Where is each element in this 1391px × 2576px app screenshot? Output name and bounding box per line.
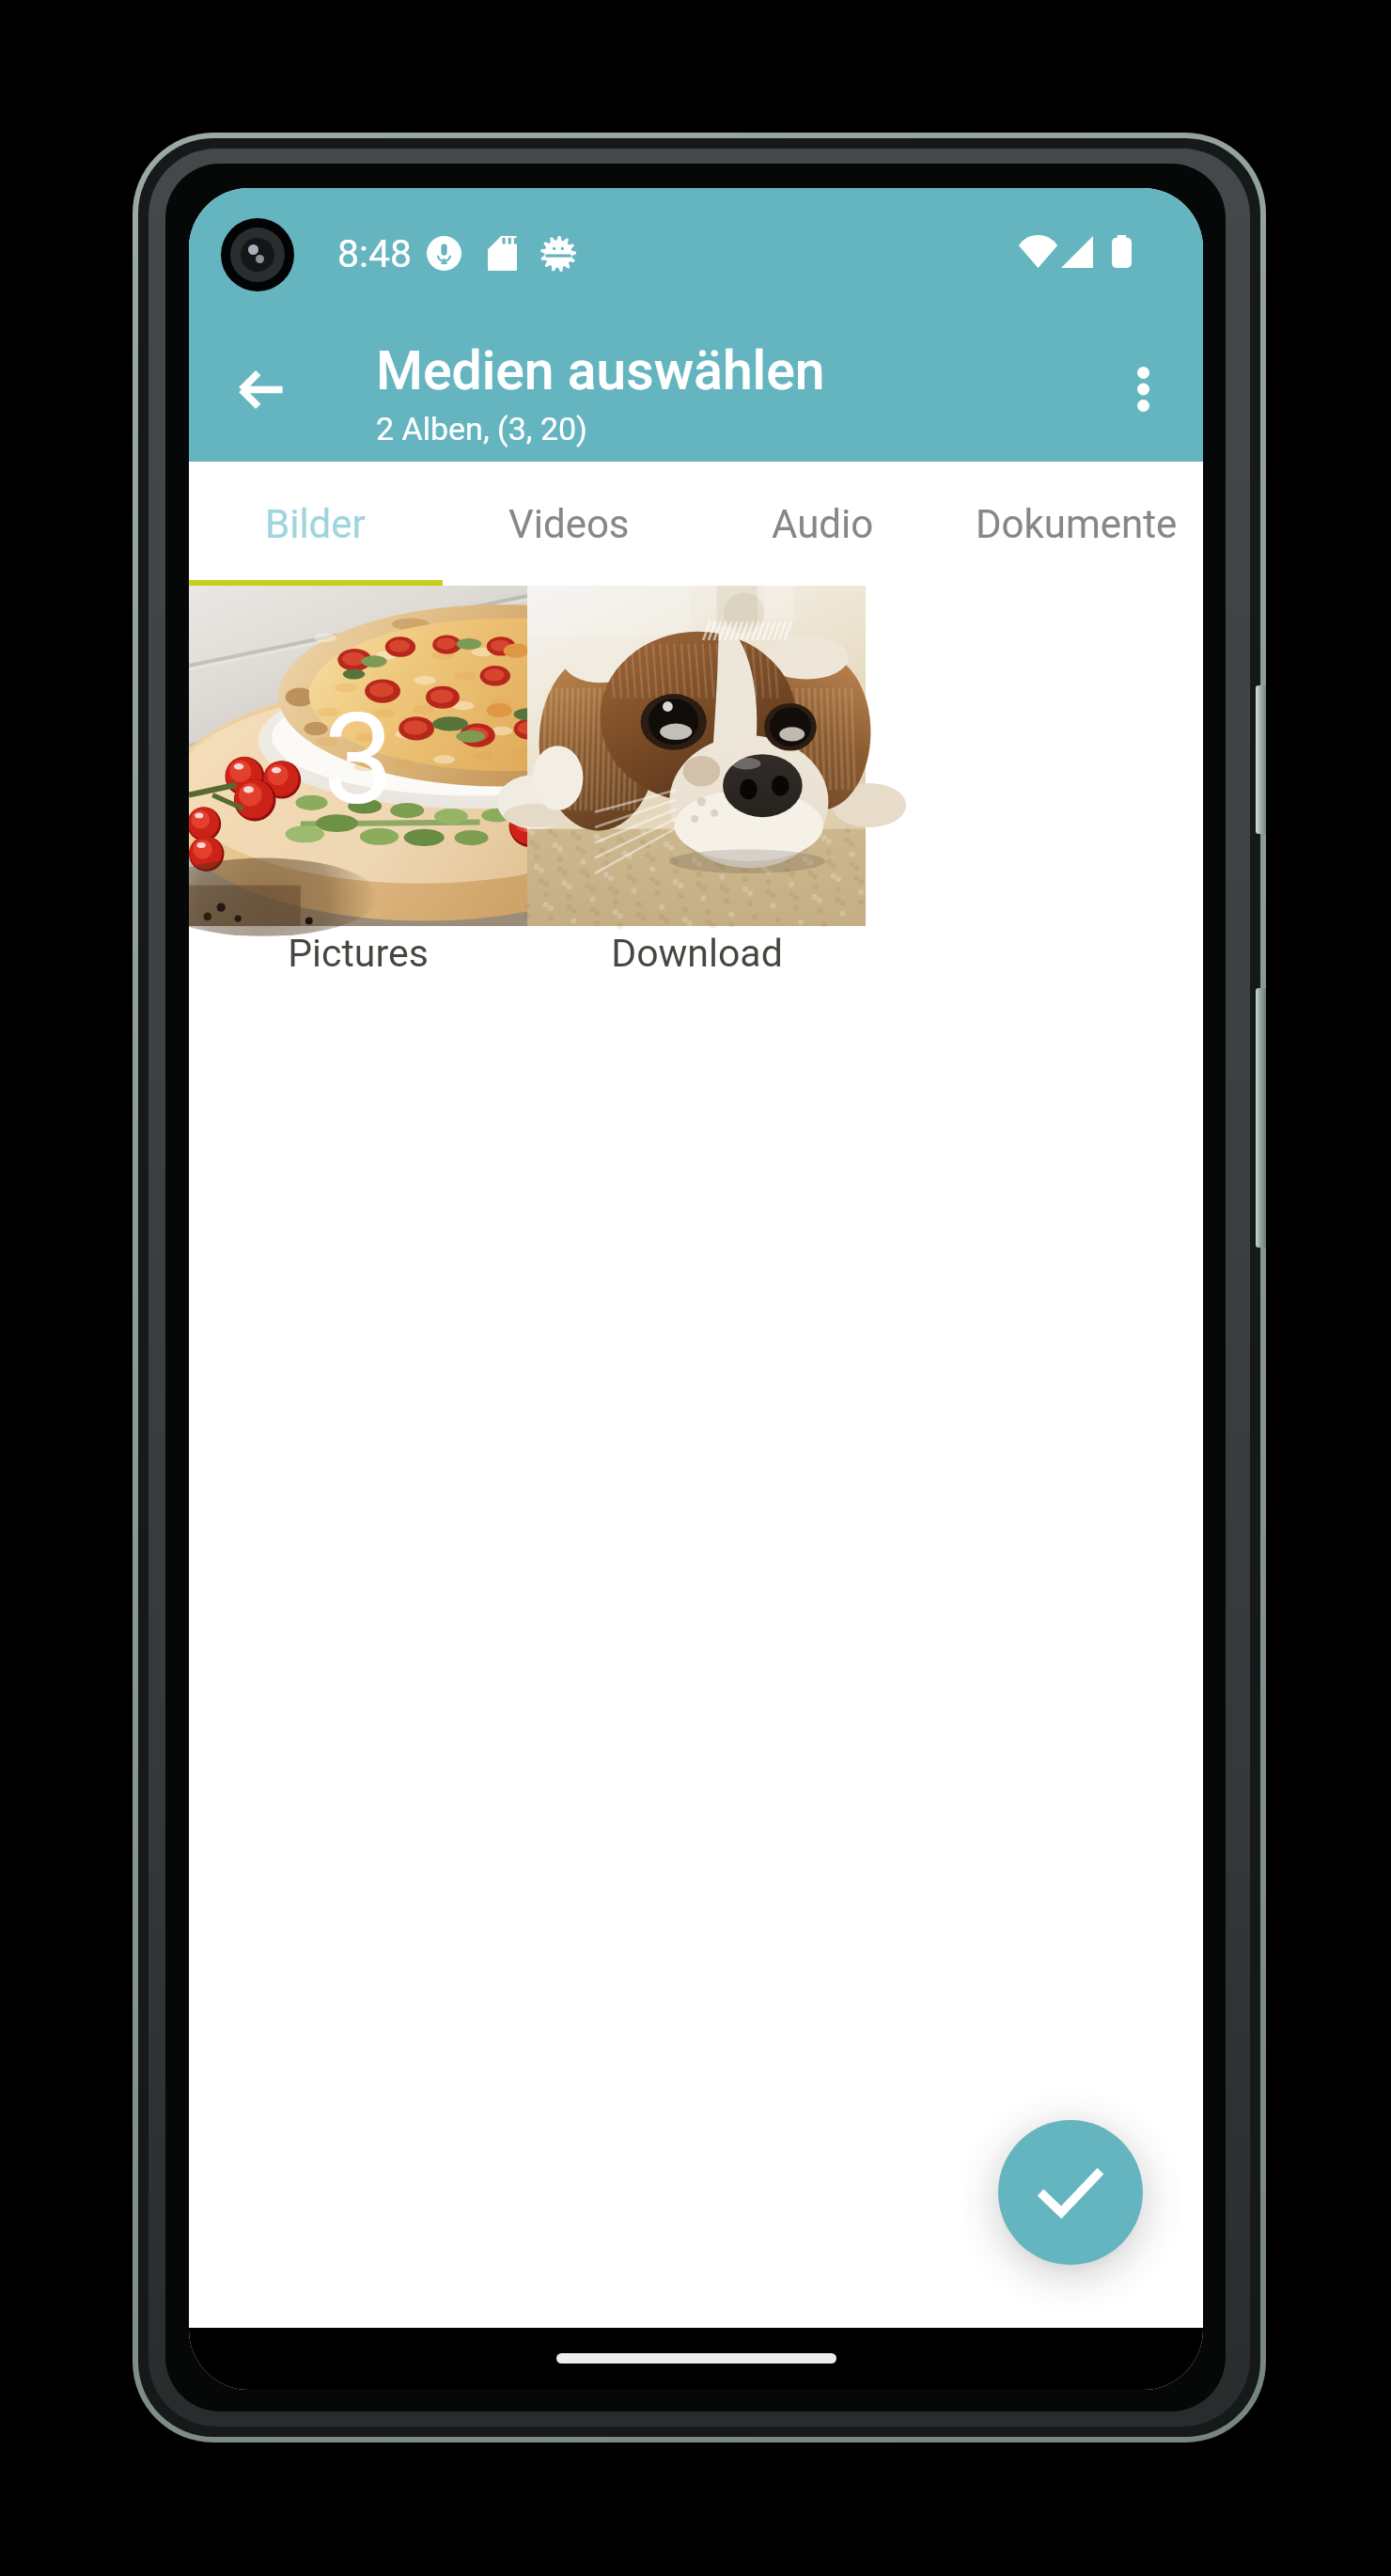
staticText: Videos <box>508 501 630 547</box>
staticText: Medien auswählen <box>376 339 825 402</box>
button[interactable]: Videos <box>442 462 695 586</box>
staticText: 3 <box>323 687 394 834</box>
staticText: 2 Alben, (3, 20) <box>376 410 587 448</box>
staticText: Pictures <box>288 931 429 976</box>
button[interactable]: Dokumente <box>949 462 1203 586</box>
staticText: Audio <box>772 501 874 547</box>
staticText: 8:48 <box>337 231 413 276</box>
button[interactable]: Weitere Optionen <box>1096 342 1190 436</box>
staticText: Bilder <box>265 501 366 547</box>
staticText: Download <box>611 931 783 976</box>
button[interactable]: Download <box>527 586 866 976</box>
staticText: Dokumente <box>976 501 1178 547</box>
button[interactable]: Audio <box>695 462 949 586</box>
button[interactable]: 3 <box>189 586 527 976</box>
button[interactable]: Bilder <box>189 462 442 586</box>
button[interactable]: Bestätigen <box>998 2120 1143 2265</box>
button[interactable]: Zurück <box>214 342 308 436</box>
